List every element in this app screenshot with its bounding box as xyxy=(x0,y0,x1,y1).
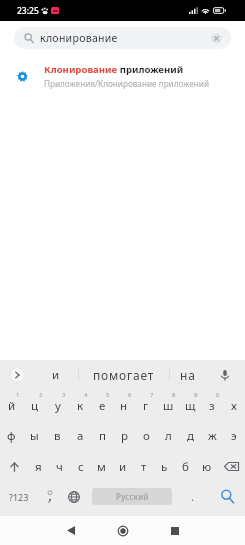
button[interactable]: ш xyxy=(157,390,179,421)
button[interactable]: Recent apps xyxy=(157,516,193,545)
staticText: ы xyxy=(30,428,39,444)
staticText: м xyxy=(97,459,106,475)
button[interactable]: ь xyxy=(154,451,175,482)
staticText: ф xyxy=(7,428,16,444)
staticText: щ xyxy=(185,398,196,414)
staticText: г xyxy=(143,398,149,414)
button[interactable]: ю xyxy=(196,451,217,482)
button[interactable]: Backspace xyxy=(217,451,245,482)
staticText: 2 xyxy=(39,391,43,399)
button[interactable]: More suggestions xyxy=(9,367,25,383)
button[interactable]: ?123 xyxy=(0,482,38,511)
staticText: н xyxy=(120,398,128,414)
staticText: х xyxy=(231,398,237,414)
staticText: д xyxy=(187,428,194,444)
staticText: ю xyxy=(202,459,212,475)
button[interactable]: Клонирование приложений xyxy=(0,61,245,91)
staticText: на xyxy=(180,367,196,383)
button[interactable]: Back xyxy=(53,516,89,545)
staticText: а xyxy=(77,428,84,444)
staticText: й xyxy=(8,398,16,414)
button[interactable] xyxy=(38,482,62,511)
staticText: б xyxy=(182,459,189,475)
staticText: клонирование xyxy=(40,31,118,45)
staticText: ?123 xyxy=(9,491,29,503)
button[interactable]: Change keyboard language xyxy=(62,482,86,511)
button[interactable]: к xyxy=(69,390,91,421)
staticText: 0 xyxy=(216,391,220,399)
button[interactable]: с xyxy=(70,451,91,482)
staticText: э xyxy=(231,428,237,444)
staticText: 7 xyxy=(150,391,154,399)
staticText: и xyxy=(119,459,127,475)
button[interactable]: Voice input xyxy=(205,360,245,390)
staticText: я xyxy=(35,459,42,475)
staticText: ж xyxy=(208,428,217,444)
button[interactable]: р xyxy=(113,421,135,451)
button[interactable]: й xyxy=(0,390,23,421)
button[interactable]: и xyxy=(112,451,133,482)
staticText: с xyxy=(78,459,84,475)
staticText: 23:25 xyxy=(17,5,39,17)
button[interactable]: у xyxy=(46,390,69,421)
button[interactable]: щ xyxy=(179,390,201,421)
button[interactable]: э xyxy=(223,421,245,451)
button[interactable]: м xyxy=(91,451,112,482)
staticText: помогает xyxy=(93,367,155,383)
button[interactable]: Русский xyxy=(92,488,172,505)
button[interactable]: ц xyxy=(23,390,46,421)
button[interactable]: . xyxy=(175,482,209,511)
button[interactable]: ж xyxy=(201,421,223,451)
staticText: у xyxy=(55,398,61,414)
button[interactable]: а xyxy=(69,421,91,451)
staticText: т xyxy=(141,459,147,475)
staticText: 3 xyxy=(62,391,66,399)
button[interactable]: д xyxy=(179,421,201,451)
button[interactable]: на xyxy=(170,360,205,390)
button[interactable]: в xyxy=(46,421,69,451)
button[interactable]: п xyxy=(91,421,113,451)
staticText: з xyxy=(209,398,215,414)
button[interactable]: клонирование xyxy=(14,27,231,49)
staticText: ш xyxy=(163,398,174,414)
button[interactable]: я xyxy=(28,451,49,482)
staticText: в xyxy=(54,428,61,444)
button[interactable]: е xyxy=(91,390,113,421)
button[interactable]: ы xyxy=(23,421,46,451)
button[interactable]: х xyxy=(223,390,245,421)
button[interactable]: ч xyxy=(49,451,70,482)
staticText: и xyxy=(52,367,60,383)
button[interactable]: з xyxy=(201,390,223,421)
button[interactable]: ф xyxy=(0,421,23,451)
staticText: ь xyxy=(161,459,168,475)
button[interactable]: Shift xyxy=(0,451,28,482)
staticText: Приложения/Клонирование приложений xyxy=(44,78,209,89)
staticText: ц xyxy=(31,398,39,414)
staticText: п xyxy=(99,428,106,444)
staticText: 6 xyxy=(128,391,132,399)
button[interactable]: Search xyxy=(209,482,245,511)
button[interactable]: Home xyxy=(105,516,141,545)
staticText: Клонирование приложений xyxy=(44,63,184,76)
staticText: 8 xyxy=(172,391,176,399)
button[interactable]: т xyxy=(133,451,154,482)
staticText: е xyxy=(99,398,106,414)
staticText: о xyxy=(143,428,150,444)
staticText: к xyxy=(77,398,84,414)
staticText: . xyxy=(191,489,194,504)
button[interactable]: б xyxy=(175,451,196,482)
staticText: ч xyxy=(56,459,63,475)
staticText: Русский xyxy=(116,491,149,502)
staticText: 1 xyxy=(16,391,20,399)
staticText: 5 xyxy=(106,391,110,399)
button[interactable]: н xyxy=(113,390,135,421)
button[interactable]: г xyxy=(135,390,157,421)
button[interactable]: и xyxy=(34,360,78,390)
button[interactable]: Clear search xyxy=(211,33,222,44)
button[interactable]: л xyxy=(157,421,179,451)
staticText: 9 xyxy=(194,391,198,399)
staticText: л xyxy=(165,428,172,444)
button[interactable]: помогает xyxy=(79,360,169,390)
button[interactable]: о xyxy=(135,421,157,451)
staticText: р xyxy=(121,428,128,444)
